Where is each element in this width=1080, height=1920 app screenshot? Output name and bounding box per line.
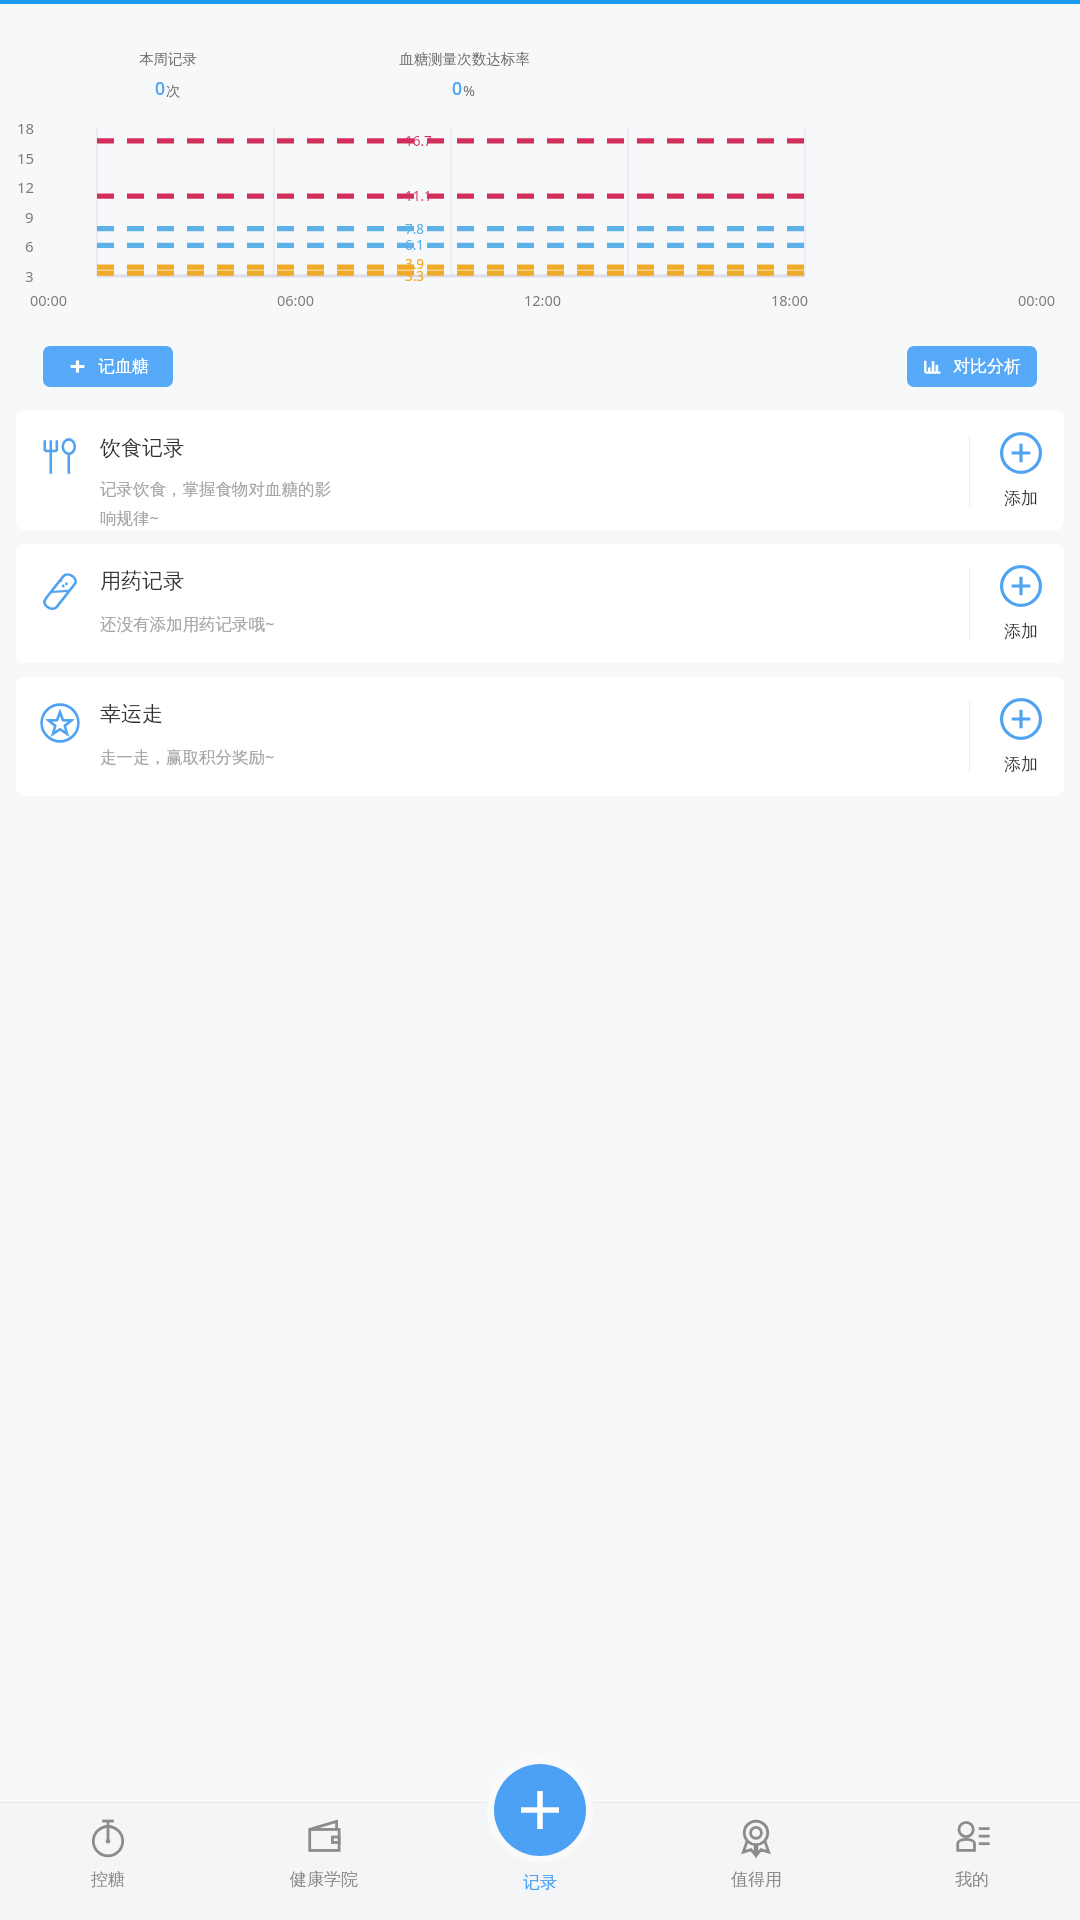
- staticText: 18: [17, 118, 35, 138]
- button[interactable]: 添加: [1000, 432, 1042, 509]
- staticText: 06:00: [277, 290, 315, 310]
- staticText: 0: [155, 76, 166, 100]
- staticText: 添加: [1004, 754, 1038, 775]
- staticText: 3: [25, 266, 34, 286]
- button[interactable]: 值得用: [648, 1802, 864, 1920]
- button[interactable]: 记血糖: [43, 346, 173, 387]
- staticText: 控糖: [91, 1869, 125, 1890]
- staticText: 响规律~: [100, 506, 159, 529]
- staticText: 本周记录: [139, 50, 197, 68]
- button[interactable]: 健康学院: [216, 1802, 432, 1920]
- staticText: 次: [166, 82, 181, 100]
- staticText: 添加: [1004, 488, 1038, 509]
- staticText: 18:00: [771, 290, 809, 310]
- staticText: 添加: [1004, 621, 1038, 642]
- staticText: 15: [17, 148, 35, 168]
- button[interactable]: 饮食记录: [16, 411, 1064, 530]
- staticText: 对比分析: [953, 356, 1021, 377]
- staticText: 血糖测量次数达标率: [399, 50, 530, 68]
- button[interactable]: 我的: [864, 1802, 1080, 1920]
- staticText: 用药记录: [100, 568, 184, 594]
- staticText: 记血糖: [98, 356, 149, 377]
- staticText: 我的: [955, 1869, 989, 1890]
- button[interactable]: 幸运走: [16, 677, 1064, 796]
- staticText: 9: [25, 207, 34, 227]
- staticText: 记录: [523, 1872, 557, 1893]
- staticText: 3.9: [405, 255, 425, 273]
- staticText: 6.1: [405, 236, 425, 254]
- staticText: 还没有添加用药记录哦~: [100, 612, 275, 635]
- staticText: %: [463, 80, 476, 100]
- button[interactable]: 控糖: [0, 1802, 216, 1920]
- staticText: 值得用: [731, 1869, 782, 1890]
- button[interactable]: 添加: [1000, 698, 1042, 775]
- staticText: 健康学院: [290, 1869, 358, 1890]
- staticText: 6: [25, 236, 34, 256]
- staticText: 12: [17, 177, 35, 197]
- button[interactable]: 记录: [523, 1872, 557, 1893]
- staticText: 7.8: [405, 220, 425, 238]
- staticText: 记录饮食，掌握食物对血糖的影: [100, 479, 331, 500]
- button[interactable]: 添加: [1000, 565, 1042, 642]
- staticText: 走一走，赢取积分奖励~: [100, 745, 275, 768]
- staticText: 00:00: [30, 290, 68, 310]
- staticText: 11.1: [405, 187, 432, 205]
- button[interactable]: 用药记录: [16, 544, 1064, 663]
- staticText: 3.3: [405, 267, 425, 285]
- staticText: 00:00: [1018, 290, 1056, 310]
- staticText: 16.7: [405, 132, 432, 150]
- button[interactable]: 添加记录: [494, 1764, 586, 1856]
- staticText: 饮食记录: [100, 435, 184, 461]
- staticText: 12:00: [524, 290, 562, 310]
- staticText: 幸运走: [100, 701, 163, 727]
- button[interactable]: 对比分析: [907, 346, 1037, 387]
- staticText: 0: [452, 76, 463, 100]
